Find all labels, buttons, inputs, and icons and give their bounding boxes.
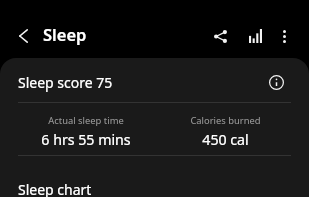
staticText: Sleep (43, 23, 87, 45)
staticText: 450 cal (202, 130, 249, 149)
staticText: Sleep chart (18, 180, 92, 197)
staticText: Actual sleep time (48, 114, 124, 127)
button[interactable]: Sleep chart (0, 165, 309, 197)
button[interactable]: Navigate up (8, 20, 39, 51)
button[interactable]: Actual sleep time (16, 114, 155, 149)
staticText: Sleep score 75 (18, 73, 113, 92)
staticText: 6 hrs 55 mins (41, 130, 131, 149)
button[interactable]: More options (267, 19, 301, 53)
button[interactable]: Sleep score 75 (0, 58, 309, 102)
button[interactable]: Share (203, 19, 237, 53)
button[interactable]: Information about sleep score (264, 70, 288, 94)
staticText: Calories burned (190, 114, 261, 127)
button[interactable]: Calories burned (155, 114, 295, 149)
button[interactable]: Trends (238, 19, 272, 53)
